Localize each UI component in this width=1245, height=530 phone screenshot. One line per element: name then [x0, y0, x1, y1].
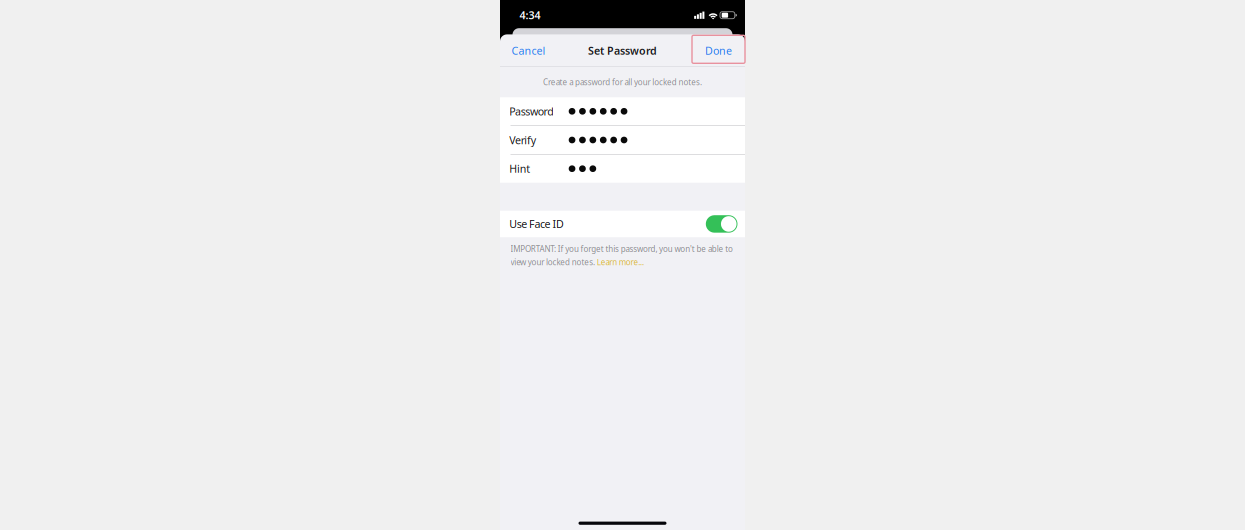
staticText: Verify: [509, 133, 536, 147]
staticText: Create a password for all your locked no…: [543, 77, 702, 87]
button[interactable]: Hint: [500, 155, 745, 183]
staticText: view your locked notes.: [510, 257, 597, 267]
staticText: IMPORTANT: If you forget this password, …: [510, 244, 733, 254]
button[interactable]: Password: [500, 97, 745, 125]
button[interactable]: Done: [692, 35, 745, 63]
button[interactable]: Learn more...: [597, 257, 644, 267]
button[interactable]: Use Face ID: [500, 211, 745, 237]
staticText: Password: [509, 104, 554, 118]
staticText: Cancel: [511, 43, 545, 58]
staticText: 4:34: [519, 8, 540, 22]
button[interactable]: Verify: [500, 126, 745, 154]
staticText: Hint: [509, 162, 530, 176]
staticText: Learn more...: [597, 257, 644, 267]
staticText: Use Face ID: [509, 217, 564, 231]
button[interactable]: Cancel: [500, 35, 552, 63]
staticText: Set Password: [588, 43, 657, 58]
staticText: Done: [705, 43, 732, 58]
